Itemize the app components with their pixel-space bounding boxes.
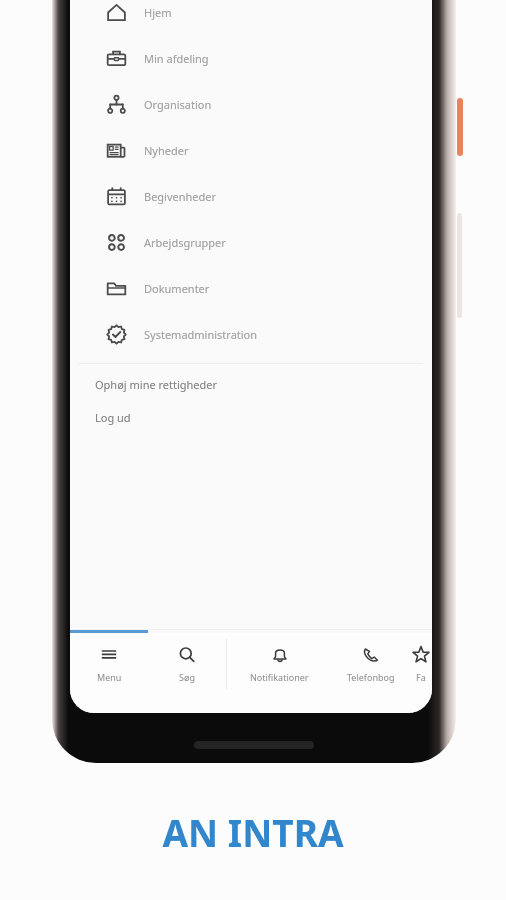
staticText: Begivenheder	[144, 189, 217, 204]
staticText: Nyheder	[144, 143, 189, 158]
staticText: Telefonbog	[347, 671, 395, 683]
staticText: Fa	[416, 671, 426, 683]
staticText: Organisation	[144, 97, 212, 112]
staticText: Log ud	[95, 410, 131, 425]
button[interactable]: Notifikationer	[227, 633, 332, 695]
button[interactable]: Systemadministration	[70, 311, 432, 357]
button[interactable]: Favoritter	[410, 633, 432, 695]
staticText: Notifikationer	[250, 671, 309, 683]
staticText: Ophøj mine rettigheder	[95, 377, 218, 392]
staticText: Min afdeling	[144, 51, 209, 66]
button[interactable]: Organisation	[70, 81, 432, 127]
staticText: Systemadministration	[144, 327, 258, 342]
button[interactable]: Min afdeling	[70, 35, 432, 81]
button[interactable]: Begivenheder	[70, 173, 432, 219]
staticText: Hjem	[144, 5, 172, 20]
staticText: Arbejdsgrupper	[144, 235, 226, 250]
staticText: Menu	[97, 671, 122, 683]
button[interactable]: Telefonbog	[332, 633, 410, 695]
staticText: Dokumenter	[144, 281, 210, 296]
button[interactable]: Ophøj mine rettigheder	[70, 371, 432, 397]
button[interactable]: Hjem	[70, 0, 432, 35]
staticText: Søg	[179, 671, 195, 683]
button[interactable]: Arbejdsgrupper	[70, 219, 432, 265]
button[interactable]: Menu	[70, 633, 148, 695]
button[interactable]: Log ud	[70, 404, 432, 430]
button[interactable]: Dokumenter	[70, 265, 432, 311]
staticText: AN INTRA	[162, 807, 344, 857]
button[interactable]: Nyheder	[70, 127, 432, 173]
button[interactable]: Søg	[148, 633, 226, 695]
